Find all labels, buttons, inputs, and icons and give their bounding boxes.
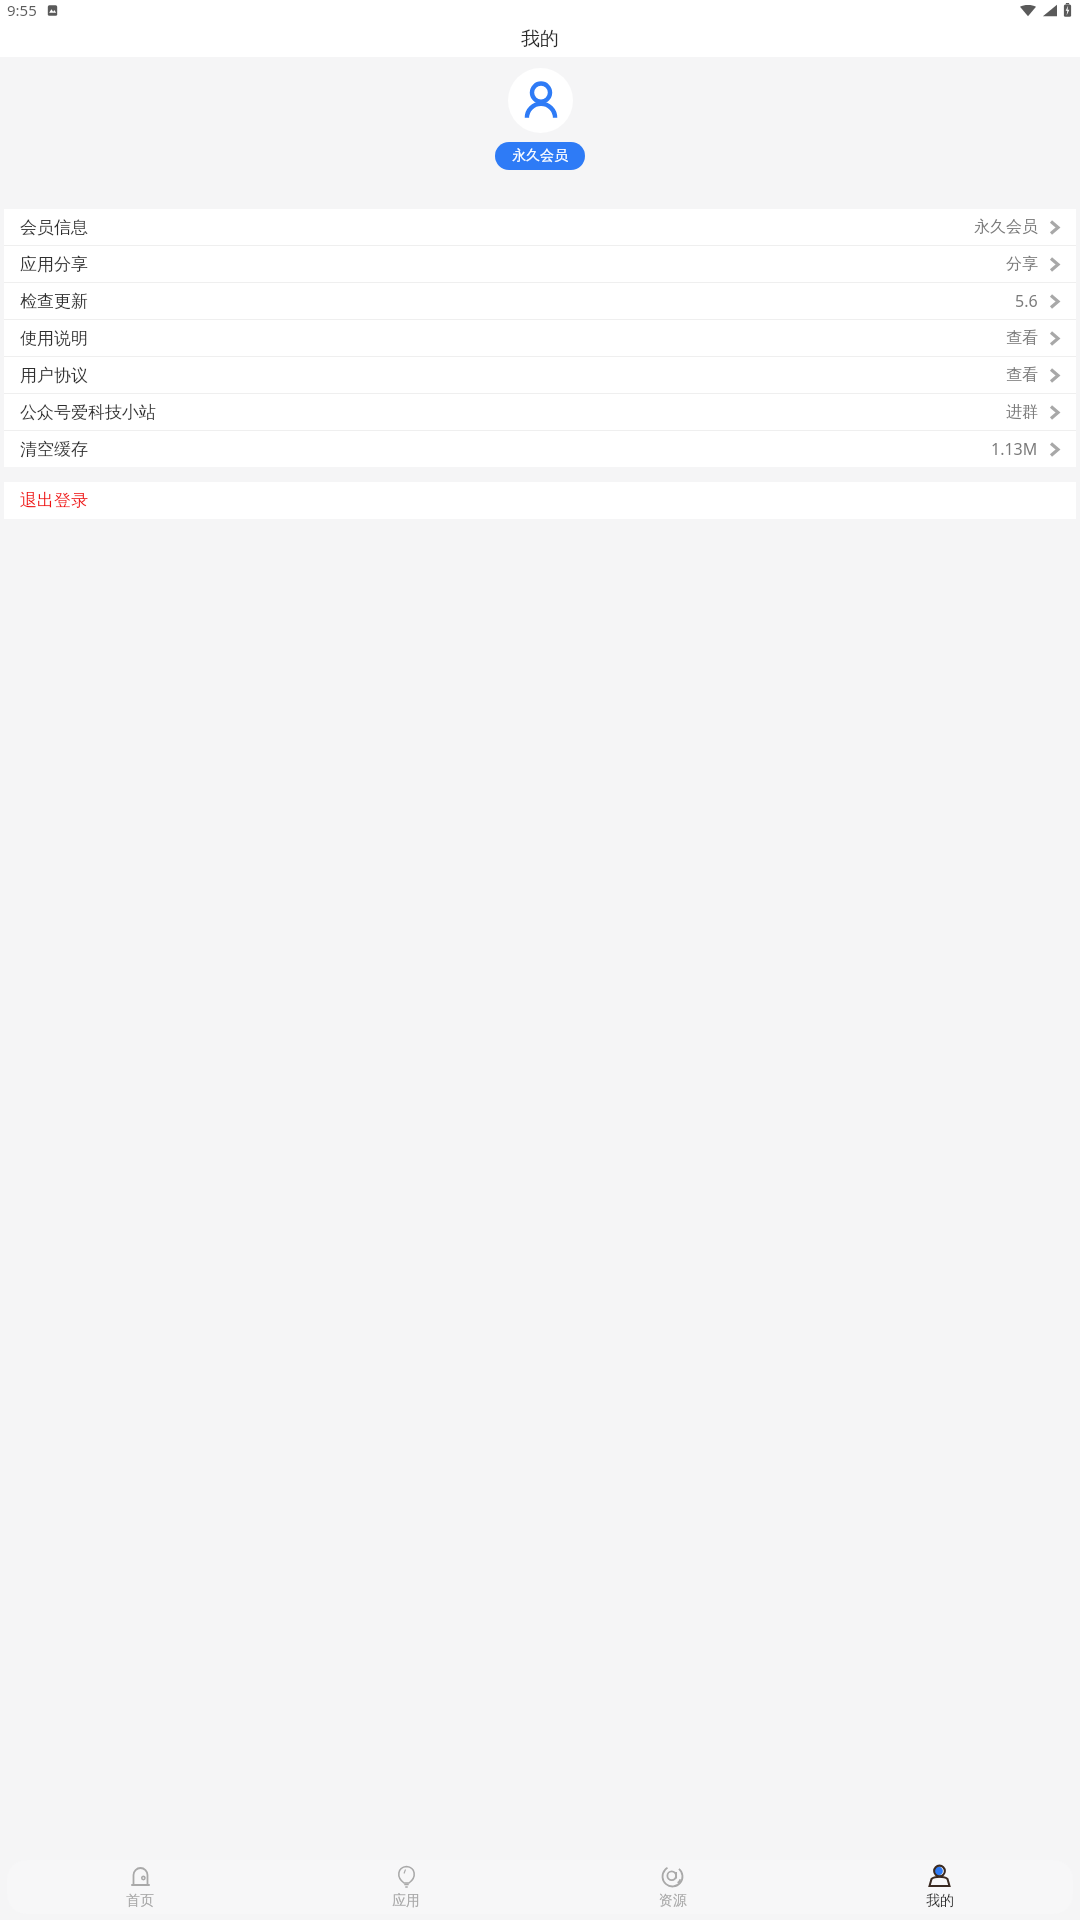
staticText: 首页	[126, 1892, 154, 1910]
staticText: 5.6	[1015, 290, 1038, 312]
staticText: 永久会员	[512, 147, 568, 165]
button[interactable]: 永久会员	[495, 142, 585, 170]
button[interactable]: 首页	[7, 1860, 273, 1914]
staticText: 检查更新	[20, 291, 88, 312]
staticText: 应用分享	[20, 254, 88, 275]
button[interactable]: 检查更新	[4, 283, 1076, 319]
staticText: 会员信息	[20, 217, 88, 238]
staticText: 1.13M	[991, 438, 1038, 460]
staticText: 我的	[926, 1892, 954, 1910]
staticText: 公众号爱科技小站	[20, 402, 156, 423]
staticText: 应用	[392, 1892, 420, 1910]
button[interactable]: 公众号爱科技小站	[4, 394, 1076, 430]
staticText: 分享	[1006, 254, 1038, 274]
button[interactable]: 应用	[273, 1860, 539, 1914]
button[interactable]: 资源	[539, 1860, 806, 1914]
button[interactable]: 会员信息	[4, 209, 1076, 245]
staticText: 退出登录	[20, 490, 88, 511]
button[interactable]: 使用说明	[4, 320, 1076, 356]
staticText: 资源	[659, 1892, 687, 1910]
button[interactable]: 用户协议	[4, 357, 1076, 393]
button[interactable]: 清空缓存	[4, 431, 1076, 467]
staticText: 用户协议	[20, 365, 88, 386]
button[interactable]: Avatar	[508, 68, 573, 133]
staticText: 查看	[1006, 365, 1038, 385]
staticText: 清空缓存	[20, 439, 88, 460]
staticText: 我的	[521, 27, 559, 51]
staticText: 使用说明	[20, 328, 88, 349]
staticText: 查看	[1006, 328, 1038, 348]
button[interactable]: 退出登录	[4, 482, 1076, 519]
button[interactable]: 应用分享	[4, 246, 1076, 282]
staticText: 进群	[1006, 402, 1038, 422]
staticText: 9:55	[7, 0, 37, 20]
button[interactable]: 我的	[806, 1860, 1073, 1914]
staticText: 永久会员	[974, 217, 1038, 237]
